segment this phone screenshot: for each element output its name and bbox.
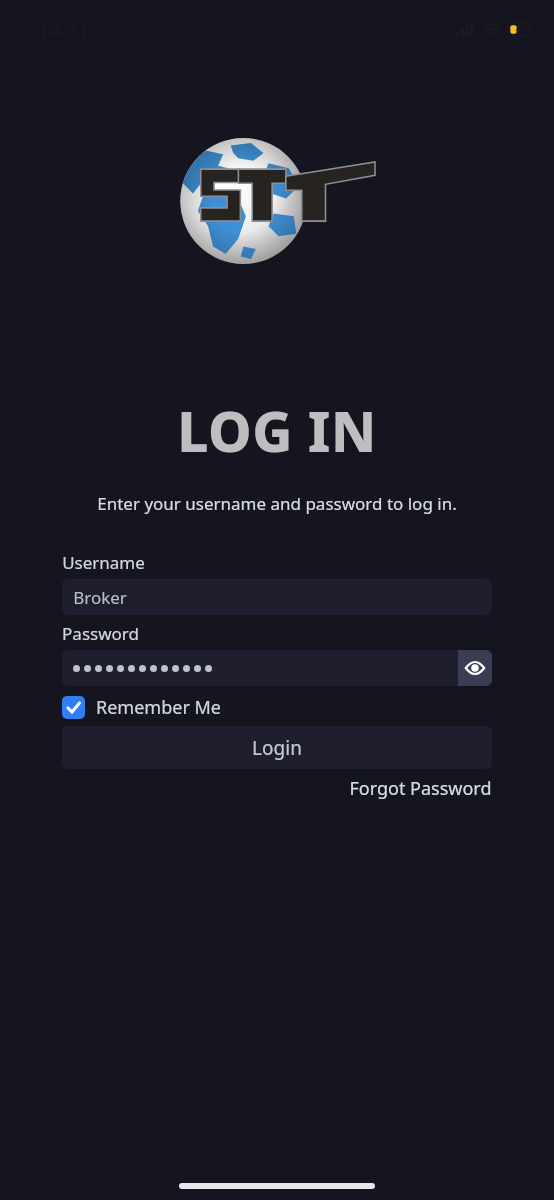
staticText: Login xyxy=(252,735,302,761)
button[interactable]: Forgot Password xyxy=(349,776,492,801)
staticText: Enter your username and password to log … xyxy=(97,492,457,515)
staticText: Remember Me xyxy=(96,695,221,720)
staticText: Forgot Password xyxy=(349,776,492,801)
button[interactable]: Remember Me xyxy=(62,695,221,720)
staticText: LOG IN xyxy=(177,393,377,468)
button[interactable]: Show password xyxy=(458,650,492,686)
staticText: Password xyxy=(62,622,139,645)
button[interactable]: Login xyxy=(62,726,492,769)
staticText: Username xyxy=(62,551,145,574)
staticText: Broker xyxy=(73,586,127,609)
button[interactable]: Broker xyxy=(62,579,492,615)
button[interactable] xyxy=(62,650,492,686)
